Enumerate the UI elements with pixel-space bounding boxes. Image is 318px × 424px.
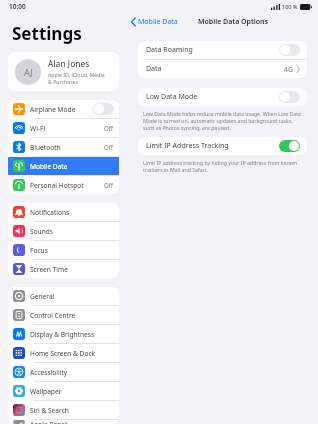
button[interactable]: Bluetooth: [8, 138, 119, 156]
button[interactable]: Mobile Data: [8, 157, 119, 175]
staticText: Mobile Data: [138, 17, 178, 27]
button[interactable]: Airplane Mode: [8, 100, 119, 118]
staticText: 10:00: [9, 2, 26, 11]
staticText: Focus: [30, 246, 114, 255]
button[interactable]: Wi-Fi: [8, 119, 119, 137]
staticText: Accessibility: [30, 368, 114, 377]
button[interactable]: Focus: [8, 241, 119, 259]
button[interactable]: Accessibility: [8, 363, 119, 381]
staticText: Wi-Fi: [30, 124, 104, 133]
button[interactable]: Toggle: [93, 103, 114, 115]
button[interactable]: Data Roaming: [138, 41, 307, 59]
button[interactable]: Data: [138, 60, 307, 78]
button[interactable]: Toggle: [279, 140, 300, 152]
staticText: & Purchases: [48, 78, 79, 85]
button[interactable]: Control Centre: [8, 306, 119, 324]
staticText: Data: [146, 64, 284, 74]
staticText: Data Roaming: [146, 45, 279, 55]
staticText: Off: [104, 143, 114, 151]
staticText: Mobile Data Options: [198, 17, 269, 27]
staticText: Personal Hotspot: [30, 181, 104, 190]
button[interactable]: Screen Time: [8, 260, 119, 278]
staticText: Low Data Mode: [146, 92, 279, 102]
staticText: Siri & Search: [30, 406, 114, 415]
button[interactable]: Wallpaper: [8, 382, 119, 400]
staticText: Screen Time: [30, 265, 114, 274]
staticText: 4G: [284, 65, 293, 74]
button[interactable]: General: [8, 287, 119, 305]
other: More: [296, 66, 300, 73]
staticText: Display & Brightness: [30, 330, 114, 339]
button[interactable]: Mobile Data: [131, 17, 178, 27]
staticText: Off: [104, 181, 114, 189]
button[interactable]: Home Screen & Dock: [8, 344, 119, 362]
button[interactable]: AJ: [8, 52, 119, 91]
staticText: Settings: [12, 22, 82, 45]
staticText: Sounds: [30, 227, 114, 236]
staticText: AJ: [24, 66, 33, 78]
staticText: Limit IP Address Tracking: [146, 141, 279, 151]
staticText: Off: [104, 124, 114, 132]
staticText: General: [30, 292, 114, 301]
button[interactable]: Display & Brightness: [8, 325, 119, 343]
staticText: Notifications: [30, 208, 114, 217]
staticText: Mobile Data: [30, 162, 114, 171]
button[interactable]: Toggle: [279, 44, 300, 56]
staticText: Limit IP address tracking by hiding your…: [143, 159, 302, 173]
staticText: Control Centre: [30, 311, 114, 320]
staticText: 100 %: [282, 3, 298, 10]
button[interactable]: Notifications: [8, 203, 119, 221]
staticText: Home Screen & Dock: [30, 349, 114, 358]
button[interactable]: Apple Pencil: [8, 420, 119, 424]
staticText: Apple ID, iCloud, Media: [48, 71, 105, 78]
button[interactable]: Siri & Search: [8, 401, 119, 419]
button[interactable]: Personal Hotspot: [8, 176, 119, 194]
button[interactable]: Toggle: [279, 91, 300, 103]
button[interactable]: Low Data Mode: [138, 88, 307, 106]
button[interactable]: Limit IP Address Tracking: [138, 137, 307, 155]
staticText: Bluetooth: [30, 143, 104, 152]
button[interactable]: Sounds: [8, 222, 119, 240]
staticText: Alan Jones: [48, 58, 90, 70]
staticText: Airplane Mode: [30, 105, 93, 114]
staticText: Wallpaper: [30, 387, 114, 396]
staticText: Low Data Mode helps reduce mobile data u…: [143, 110, 302, 131]
staticText: Apple Pencil: [30, 420, 114, 424]
